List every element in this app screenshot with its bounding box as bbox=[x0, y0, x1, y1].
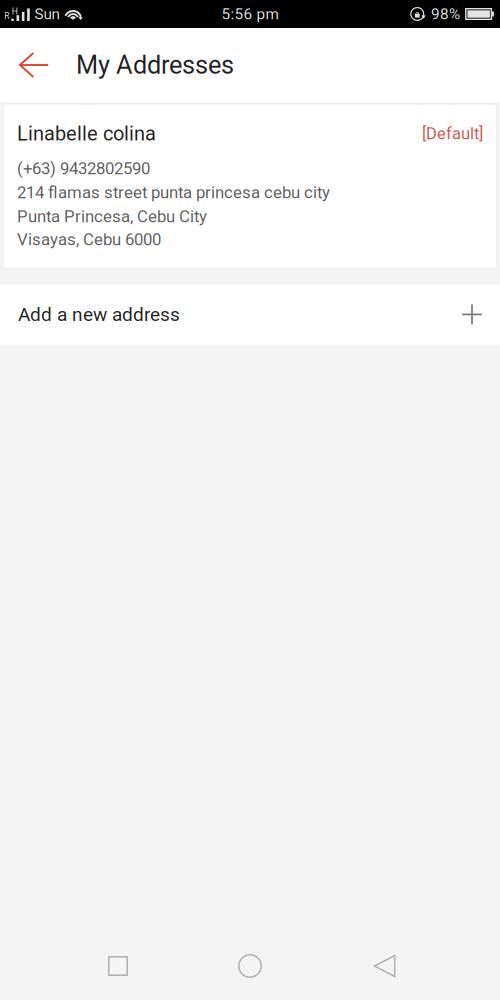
staticText: Add a new address bbox=[18, 303, 180, 326]
staticText: (+63) 9432802590 bbox=[17, 159, 150, 178]
button[interactable]: Back bbox=[264, 932, 500, 1000]
button[interactable]: Add a new address bbox=[0, 284, 500, 344]
staticText: 5:56 pm bbox=[221, 5, 278, 23]
button[interactable]: Linabelle colina bbox=[3, 104, 497, 268]
staticText: H bbox=[12, 6, 18, 17]
staticText: My Addresses bbox=[76, 50, 234, 80]
staticText: Punta Princesa, Cebu City bbox=[17, 207, 207, 226]
staticText: [Default] bbox=[422, 124, 483, 143]
staticText: Sun bbox=[34, 5, 59, 23]
staticText: Linabelle colina bbox=[17, 122, 156, 145]
staticText: Visayas, Cebu 6000 bbox=[17, 230, 161, 249]
button[interactable]: Recents bbox=[0, 932, 236, 1000]
button[interactable]: Home bbox=[236, 932, 264, 1000]
staticText: R bbox=[4, 11, 9, 21]
staticText: 98% bbox=[431, 5, 460, 23]
button[interactable]: Back bbox=[0, 28, 76, 102]
staticText: 214 flamas street punta princesa cebu ci… bbox=[17, 183, 330, 202]
